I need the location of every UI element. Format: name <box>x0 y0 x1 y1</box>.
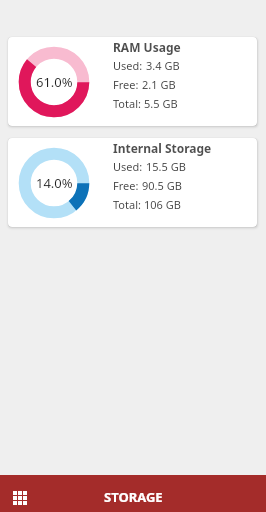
staticText: 5.5 GB <box>144 96 178 111</box>
staticText: 2.1 GB <box>142 77 176 92</box>
button[interactable]: STORAGE <box>104 488 163 506</box>
staticText: RAM Usage <box>113 39 181 55</box>
staticText: Used: <box>113 58 143 73</box>
button[interactable]: 61.0% <box>8 37 257 126</box>
staticText: Total: <box>113 96 141 111</box>
staticText: 14.0% <box>36 174 73 192</box>
staticText: 3.4 GB <box>146 58 180 73</box>
staticText: Free: <box>113 178 139 193</box>
staticText: Internal Storage <box>113 140 212 156</box>
staticText: 90.5 GB <box>142 178 182 193</box>
staticText: STORAGE <box>104 488 163 506</box>
staticText: Total: <box>113 197 141 212</box>
button[interactable]: 14.0% <box>8 138 257 227</box>
staticText: Free: <box>113 77 139 92</box>
staticText: 61.0% <box>36 73 73 91</box>
staticText: Used: <box>113 159 143 174</box>
staticText: 106 GB <box>144 197 181 212</box>
button[interactable] <box>8 486 32 510</box>
staticText: 15.5 GB <box>146 159 186 174</box>
